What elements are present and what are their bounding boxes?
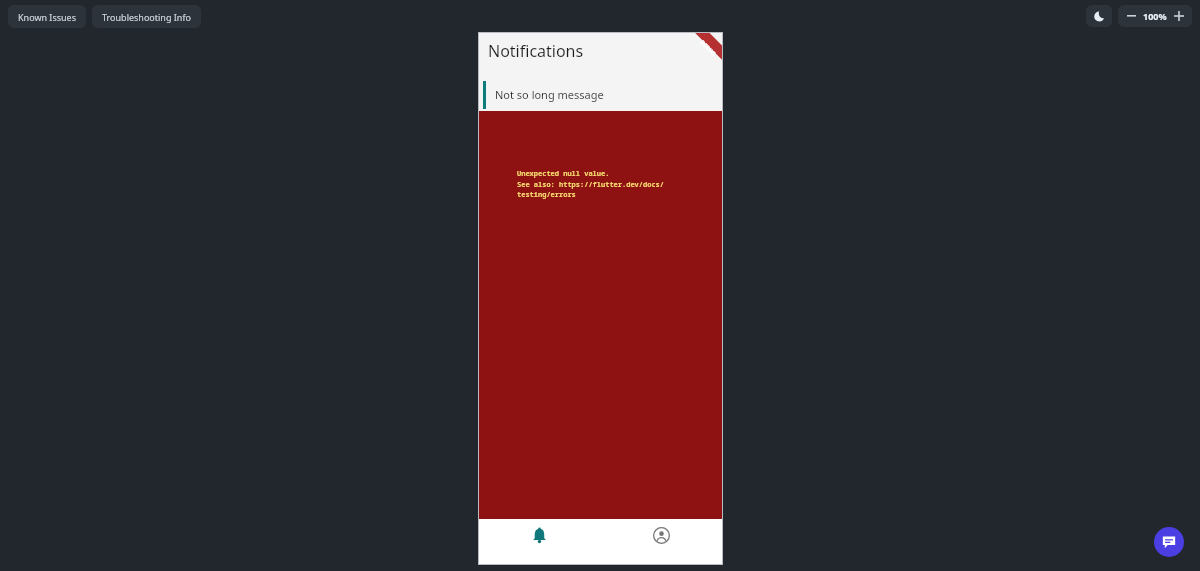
- button[interactable]: Zoom out: [1125, 10, 1137, 22]
- button[interactable]: Troubleshooting Info: [102, 5, 191, 28]
- button[interactable]: Known Issues: [18, 5, 76, 28]
- button[interactable]: Open chat: [1154, 527, 1184, 557]
- button[interactable]: Account: [600, 519, 723, 565]
- staticText: Not so long message: [495, 87, 604, 102]
- button[interactable]: Zoom in: [1173, 10, 1185, 22]
- button[interactable]: Not so long message: [478, 78, 723, 111]
- staticText: Troubleshooting Info: [102, 11, 191, 23]
- staticText: Unexpected null value. See also: https:/…: [517, 169, 667, 199]
- staticText: DEBUG: [699, 38, 718, 57]
- staticText: Known Issues: [18, 11, 76, 23]
- button[interactable]: Toggle dark mode: [1086, 5, 1112, 27]
- button[interactable]: Notifications: [478, 519, 600, 565]
- staticText: 100%: [1143, 10, 1167, 22]
- staticText: Notifications: [488, 40, 584, 62]
